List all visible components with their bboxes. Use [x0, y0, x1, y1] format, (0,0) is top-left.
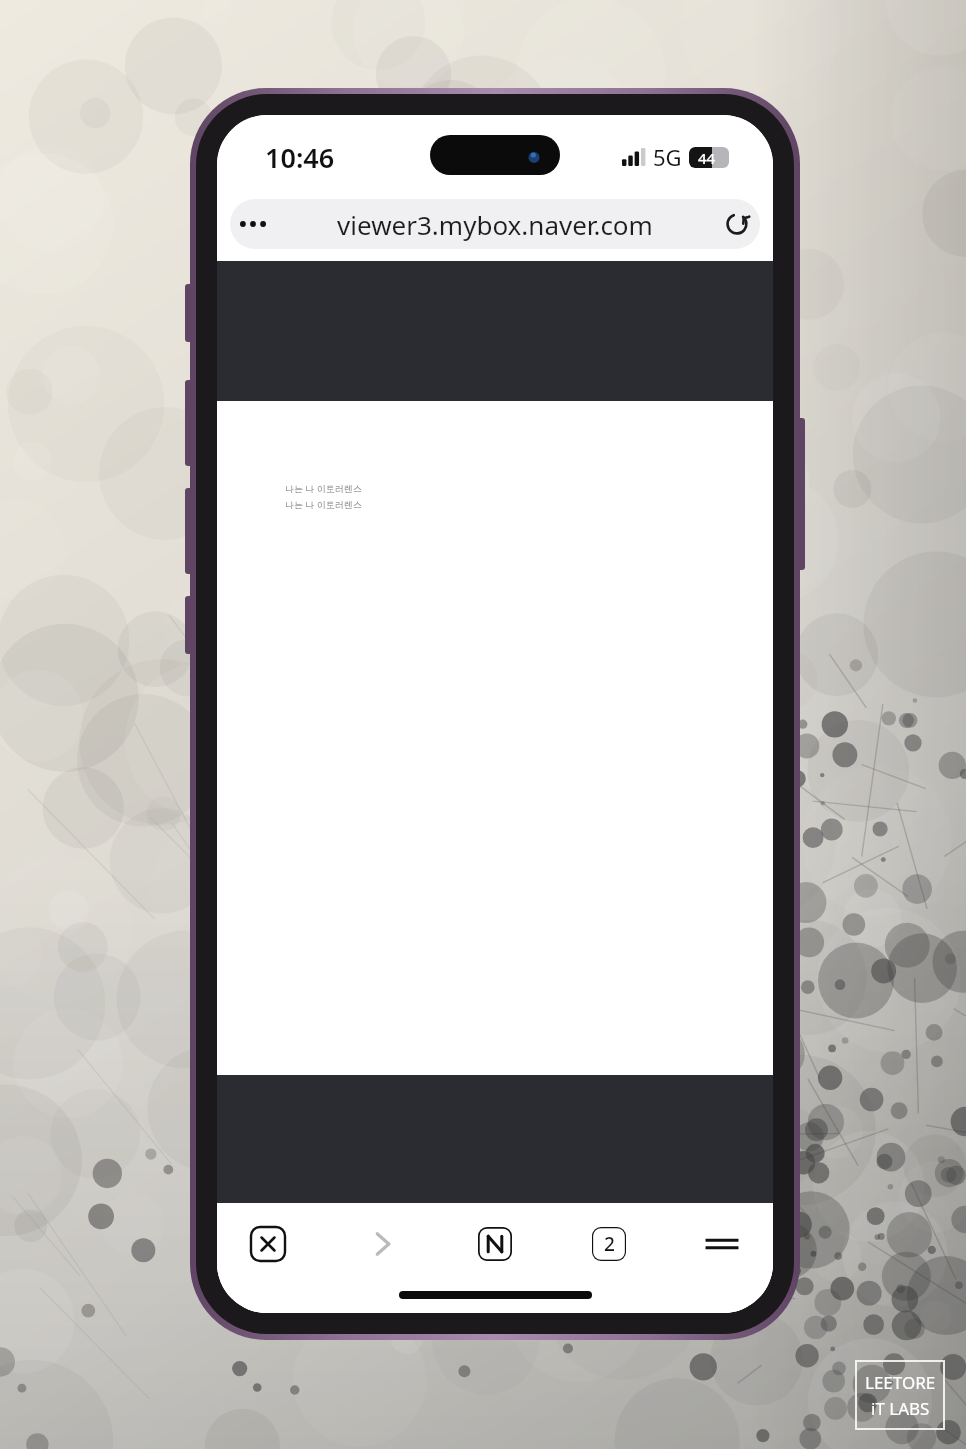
button[interactable]: Close tab: [239, 1217, 297, 1271]
staticText: viewer3.mybox.naver.com: [276, 207, 714, 242]
button[interactable]: More options: [230, 199, 760, 249]
staticText: 2: [604, 1231, 615, 1257]
button[interactable]: Forward: [353, 1217, 411, 1271]
button[interactable]: Reload: [714, 201, 760, 247]
staticText: iT LABS: [871, 1397, 930, 1420]
button[interactable]: Naver: [466, 1217, 524, 1271]
staticText: 10:46: [265, 139, 335, 176]
staticText: LEETORE: [865, 1371, 936, 1394]
staticText: 나는 나 이토러렌스: [285, 482, 362, 494]
staticText: 5G: [653, 142, 682, 172]
button[interactable]: Tabs: 2: [580, 1217, 638, 1271]
button[interactable]: Menu: [693, 1217, 751, 1271]
staticText: 나는 나 이토러렌스: [285, 498, 362, 510]
staticText: 44: [698, 148, 716, 168]
button[interactable]: More options: [230, 201, 276, 247]
